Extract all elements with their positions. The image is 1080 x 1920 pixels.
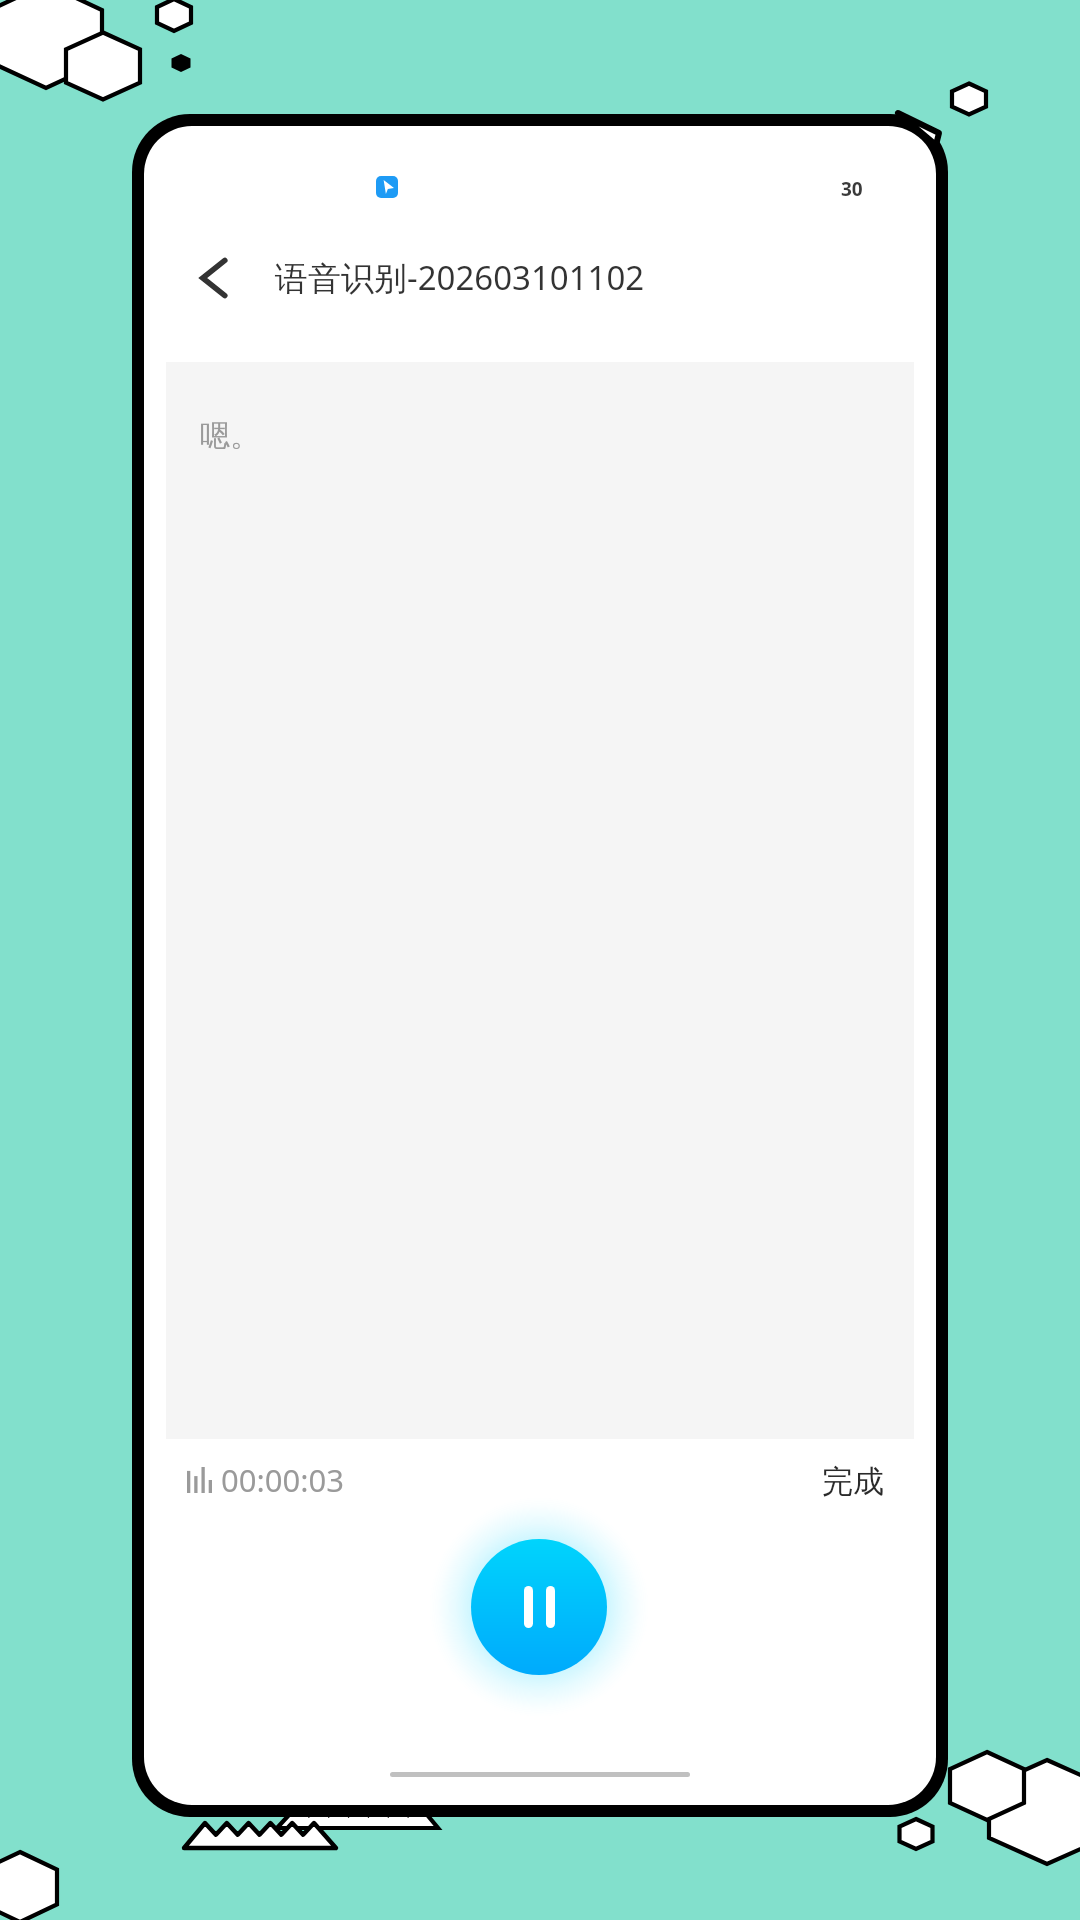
button[interactable]: Pause recording (471, 1539, 607, 1675)
button[interactable]: 完成 (822, 1462, 884, 1501)
staticText: 嗯。 (200, 417, 260, 455)
staticText: 30 (841, 176, 863, 202)
button[interactable]: Back (185, 250, 241, 306)
staticText: 完成 (822, 1462, 884, 1501)
staticText: 00:00:03 (221, 1459, 345, 1501)
staticText: 语音识别-202603101102 (275, 255, 645, 300)
